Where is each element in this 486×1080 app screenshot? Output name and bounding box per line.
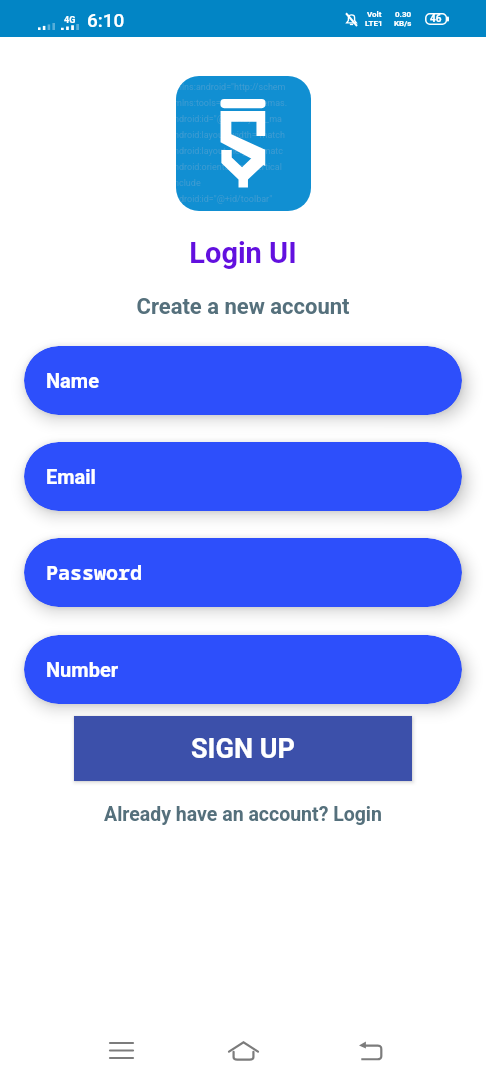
staticText: Already have an account? Login: [0, 803, 486, 826]
staticText: Volt: [367, 10, 382, 19]
staticText: Name: [46, 369, 99, 392]
button[interactable]: Home: [219, 1034, 268, 1067]
staticText: ndroid:layout_height="matc: [176, 146, 283, 157]
staticText: mlns:tools="http://schemas.: [176, 98, 288, 109]
staticText: LTE1: [365, 19, 383, 28]
staticText: 0.30: [395, 10, 412, 19]
button[interactable]: Name: [24, 346, 462, 415]
button[interactable]: Password: [24, 538, 462, 607]
staticText: nclude: [176, 178, 201, 189]
button[interactable]: Back: [346, 1034, 395, 1067]
staticText: 6:10: [87, 9, 125, 31]
staticText: ndroid:id="@+id/toolbar": [176, 194, 273, 205]
staticText: Email: [46, 465, 96, 488]
staticText: ndroid:layout_width="match: [176, 130, 285, 141]
button[interactable]: Email: [24, 442, 462, 511]
staticText: ndroid:id="@+id/layout_ma: [176, 114, 282, 125]
staticText: SIGN UP: [191, 733, 295, 765]
button[interactable]: Number: [24, 635, 462, 704]
staticText: Number: [46, 658, 119, 681]
staticText: 46: [430, 13, 442, 25]
button[interactable]: Recent apps: [97, 1034, 146, 1067]
staticText: 4G: [64, 15, 76, 26]
staticText: KB/s: [394, 19, 412, 28]
staticText: Create a new account: [0, 294, 486, 320]
staticText: Login UI: [0, 236, 486, 270]
button[interactable]: SIGN UP: [74, 716, 412, 781]
staticText: mlns:android="http://schem: [176, 82, 286, 93]
staticText: Password: [46, 559, 142, 586]
staticText: ndroid:orientation="vertical: [176, 162, 282, 173]
